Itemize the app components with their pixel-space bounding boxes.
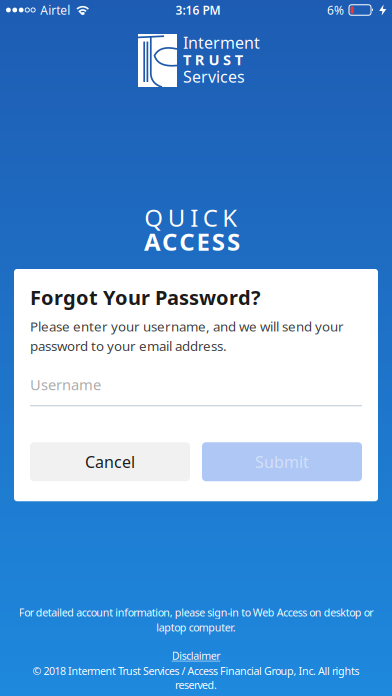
staticText: For detailed account information, please… [19,605,373,619]
staticText: TRUST [183,50,250,69]
staticText: Username [30,375,101,394]
button[interactable]: Disclaimer [172,648,220,663]
staticText: 3:16 PM [175,2,220,18]
staticText: Cancel [85,451,135,472]
staticText: Interment [183,32,260,53]
staticText: Airtel [40,2,70,18]
staticText: ACCESS [144,226,248,257]
button[interactable]: Username [30,375,362,406]
staticText: Submit [255,451,309,472]
staticText: 6% [327,2,344,18]
staticText: Services [183,66,245,87]
staticText: © 2018 Interment Trust Services / Access… [32,664,359,678]
staticText: Disclaimer [172,648,220,663]
staticText: Please enter your username, and we will … [30,318,344,355]
staticText: reserved. [175,678,217,692]
staticText: Forgot Your Password? [30,284,261,311]
staticText: laptop computer. [156,620,236,634]
button[interactable]: Submit [202,442,362,481]
staticText: QUICK [144,202,248,233]
button[interactable]: Cancel [30,442,190,481]
